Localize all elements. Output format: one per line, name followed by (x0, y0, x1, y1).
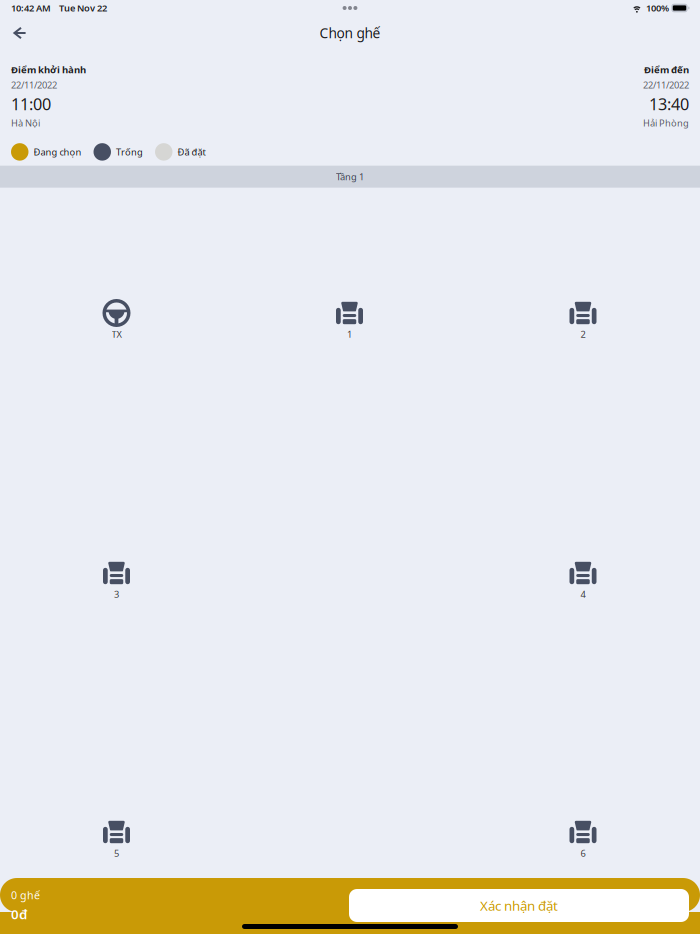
staticText: Tầng 1 (336, 170, 364, 183)
staticText: 100% (646, 2, 669, 14)
staticText: 1 (347, 328, 352, 340)
button[interactable]: 3 (81, 559, 151, 601)
staticText: Tue Nov 22 (59, 2, 107, 14)
button[interactable]: 6 (548, 818, 618, 860)
staticText: Hải Phòng (643, 116, 689, 129)
staticText: 5 (114, 847, 119, 859)
staticText: 6 (580, 847, 585, 859)
staticText: Hà Nội (11, 116, 40, 129)
staticText: 3 (114, 588, 119, 600)
staticText: Chọn ghế (319, 24, 380, 42)
staticText: Đã đặt (177, 146, 205, 158)
button[interactable]: Back (1, 16, 39, 50)
staticText: 22/11/2022 (11, 79, 57, 91)
button[interactable]: 5 (81, 818, 151, 860)
button[interactable]: Xác nhận đặt (349, 889, 689, 922)
staticText: 10:42 AM (11, 2, 51, 14)
staticText: Đang chọn (33, 146, 81, 158)
staticText: 11:00 (11, 93, 51, 115)
staticText: 0đ (11, 905, 27, 923)
button[interactable]: 2 (548, 299, 618, 341)
staticText: 22/11/2022 (643, 79, 689, 91)
staticText: 4 (580, 588, 585, 600)
staticText: 2 (580, 328, 585, 340)
staticText: Xác nhận đặt (480, 897, 558, 914)
button[interactable]: 4 (548, 559, 618, 601)
staticText: 0 ghế (11, 888, 40, 902)
staticText: TX (111, 328, 121, 340)
button[interactable]: 1 (314, 299, 384, 341)
staticText: Điểm đến (644, 63, 689, 76)
staticText: 13:40 (649, 93, 689, 115)
staticText: Trống (116, 146, 143, 158)
staticText: Điểm khởi hành (11, 63, 86, 76)
